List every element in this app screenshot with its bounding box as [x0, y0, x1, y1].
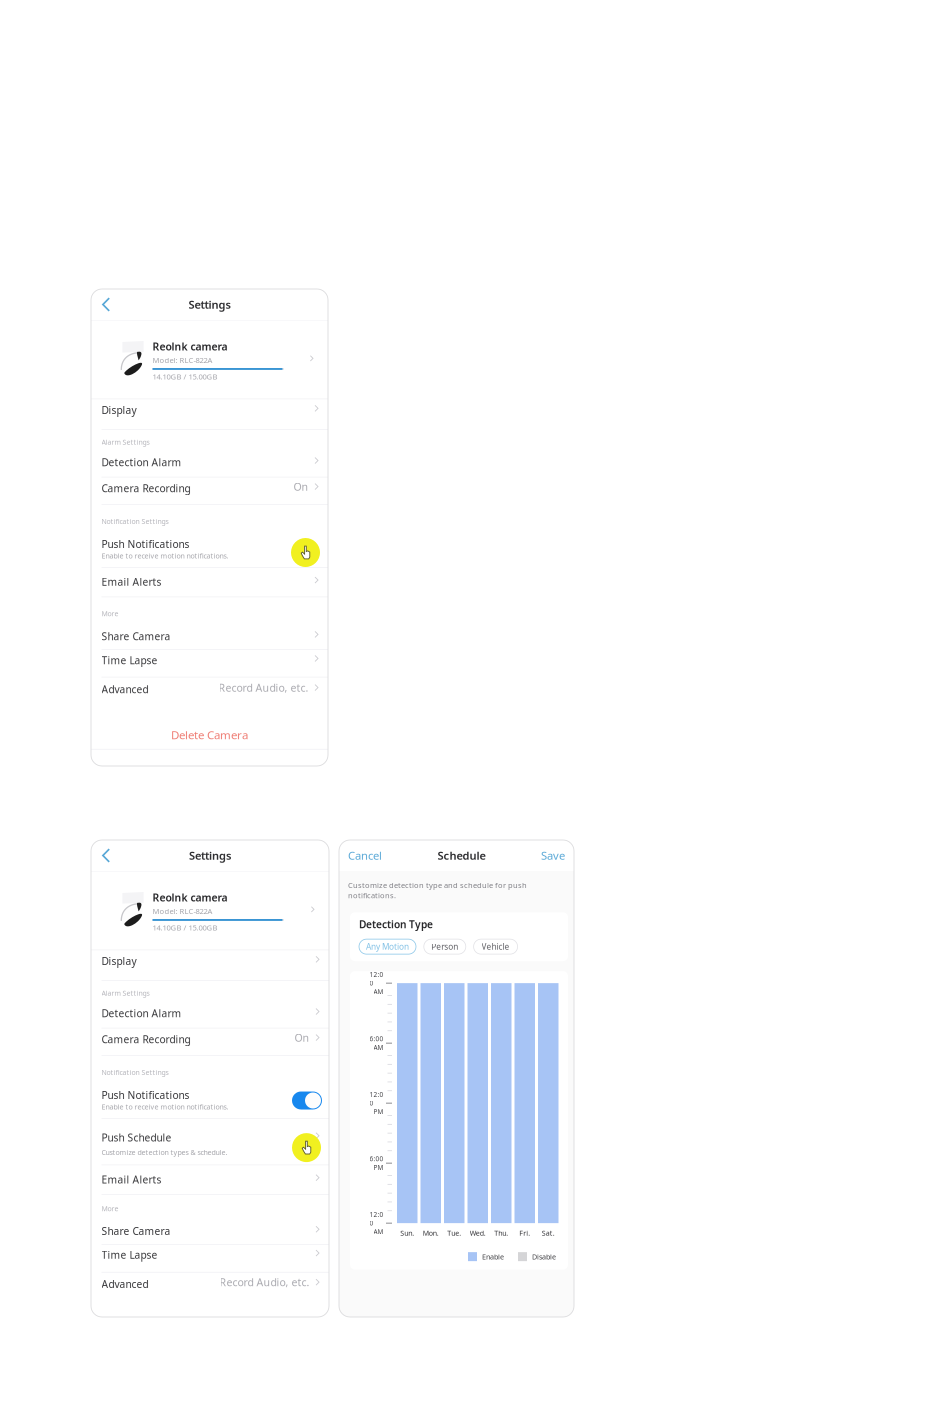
staticText: Mon.	[423, 1228, 439, 1238]
staticText: Record Audio, etc.	[219, 1275, 309, 1289]
button[interactable]: Back	[91, 289, 118, 320]
staticText: Push Notifications	[101, 1088, 189, 1102]
button[interactable]: Delete Camera	[91, 728, 328, 742]
staticText: Customize detection type and schedule fo…	[348, 880, 527, 900]
staticText: Email Alerts	[101, 1172, 161, 1186]
staticText: Sun.	[400, 1228, 414, 1238]
staticText: Detection Type	[359, 917, 433, 931]
staticText: Delete Camera	[171, 727, 248, 743]
staticText: Camera Recording	[101, 1032, 190, 1046]
staticText: Enable to receive motion notifications.	[101, 551, 228, 560]
staticText: Customize detection types & schedule.	[101, 1147, 227, 1157]
staticText: Time Lapse	[101, 1248, 157, 1262]
staticText: More	[101, 1204, 118, 1213]
staticText: 14.10GB / 15.00GB	[152, 922, 217, 933]
staticText: Model: RLC-822A	[152, 355, 212, 365]
button[interactable]: Share Camera	[91, 1213, 329, 1244]
staticText: Model: RLC-822A	[152, 906, 212, 916]
button[interactable]: Email Alerts	[91, 1165, 329, 1194]
staticText: PM	[373, 1107, 383, 1116]
button[interactable]: Push Notifications	[91, 1077, 329, 1118]
staticText: Advanced	[101, 1277, 148, 1291]
staticText: On	[294, 1030, 309, 1045]
staticText: 12:00	[369, 1210, 383, 1227]
staticText: Notification Settings	[101, 1068, 168, 1077]
staticText: Display	[101, 403, 136, 417]
staticText: Person	[431, 941, 458, 952]
staticText: Record Audio, etc.	[218, 680, 308, 695]
staticText: 12:00	[369, 970, 383, 987]
button[interactable]: Detection Alarm	[91, 447, 328, 477]
staticText: AM	[373, 987, 383, 996]
button[interactable]: Camera Recording	[91, 477, 328, 504]
staticText: More	[101, 609, 118, 618]
staticText: Sat.	[542, 1228, 555, 1238]
staticText: Share Camera	[101, 1224, 170, 1238]
button[interactable]: Save	[536, 840, 574, 871]
button[interactable]: Cancel	[339, 840, 387, 871]
staticText: Detection Alarm	[101, 1006, 181, 1020]
staticText: Thu.	[494, 1228, 508, 1238]
staticText: Settings	[188, 297, 230, 312]
button[interactable]: Any Motion	[359, 939, 416, 954]
staticText: 14.10GB / 15.00GB	[152, 371, 217, 382]
staticText: 6:00	[369, 1154, 383, 1163]
staticText: Push Schedule	[101, 1131, 171, 1144]
button[interactable]: Time Lapse	[91, 650, 328, 677]
staticText: Notification Settings	[101, 517, 168, 526]
staticText: Enable	[482, 1252, 504, 1262]
staticText: AM	[373, 1043, 383, 1052]
button[interactable]: Detection Alarm	[91, 998, 329, 1028]
staticText: Tue.	[447, 1228, 461, 1238]
staticText: 12:00	[369, 1090, 383, 1107]
button[interactable]: Share Camera	[91, 618, 328, 649]
staticText: Alarm Settings	[101, 437, 149, 447]
staticText: Wed.	[470, 1228, 486, 1238]
staticText: Advanced	[101, 682, 148, 696]
button[interactable]: Person	[424, 939, 466, 954]
staticText: Email Alerts	[101, 575, 161, 589]
staticText: On	[293, 479, 308, 494]
button[interactable]: Camera Recording	[91, 1028, 329, 1055]
staticText: Disable	[532, 1252, 556, 1262]
staticText: Cancel	[348, 848, 382, 863]
button[interactable]: Time Lapse	[91, 1245, 329, 1272]
button[interactable]: Display	[91, 950, 329, 980]
staticText: Any Motion	[366, 941, 409, 952]
staticText: Reolnk camera	[152, 339, 227, 354]
staticText: Time Lapse	[101, 653, 157, 667]
staticText: Settings	[189, 848, 231, 863]
staticText: Fri.	[519, 1228, 530, 1238]
staticText: Detection Alarm	[101, 455, 181, 469]
staticText: AM	[373, 1227, 383, 1236]
button[interactable]: Advanced	[91, 1272, 329, 1299]
button[interactable]: Vehicle	[474, 939, 518, 954]
staticText: Alarm Settings	[101, 988, 149, 998]
staticText: Save	[541, 848, 565, 863]
staticText: Reolnk camera	[152, 890, 227, 905]
staticText: 6:00	[369, 1034, 383, 1043]
staticText: Display	[101, 954, 136, 968]
button[interactable]: Back	[91, 840, 118, 871]
button[interactable]: Push Schedule	[91, 1119, 329, 1165]
staticText: Vehicle	[482, 941, 510, 952]
button[interactable]: Push Notifications toggle	[292, 1085, 329, 1109]
button[interactable]: Display	[91, 399, 328, 429]
button[interactable]: Advanced	[91, 677, 328, 704]
button[interactable]: Reolnk camera	[96, 331, 323, 389]
staticText: PM	[373, 1163, 383, 1172]
button[interactable]: Email Alerts	[91, 568, 328, 597]
staticText: Schedule	[437, 848, 485, 863]
button[interactable]: Push Notifications	[91, 526, 328, 567]
button[interactable]: Reolnk camera	[96, 882, 324, 940]
staticText: Camera Recording	[101, 481, 190, 495]
staticText: Enable to receive motion notifications.	[101, 1102, 228, 1111]
staticText: Share Camera	[101, 629, 170, 643]
staticText: Push Notifications	[101, 537, 189, 551]
